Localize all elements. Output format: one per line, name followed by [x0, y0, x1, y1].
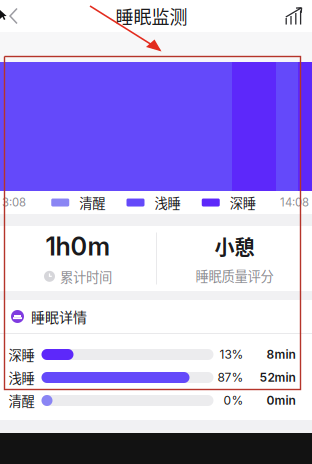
staticText: 睡眠详情 [31, 306, 87, 327]
staticText: 浅睡 [154, 193, 180, 212]
staticText: 小憩 [214, 232, 254, 261]
staticText: 清醒 [8, 391, 34, 410]
staticText: 睡眠质量评分 [195, 266, 273, 285]
staticText: 深睡 [8, 345, 34, 364]
staticText: 清醒 [79, 193, 105, 212]
staticText: 0% [223, 393, 243, 408]
staticText: 浅睡 [8, 368, 34, 387]
staticText: 3:08 [2, 196, 26, 209]
staticText: 14:08 [280, 196, 309, 209]
staticText: 0min [266, 393, 295, 408]
staticText: 睡眠监测 [115, 3, 187, 29]
staticText: 8min [266, 347, 295, 362]
button[interactable]: Statistics [275, 0, 312, 32]
staticText: 累计时间 [60, 267, 112, 286]
staticText: 深睡 [230, 193, 256, 212]
staticText: 13% [219, 347, 243, 362]
staticText: 87% [217, 370, 243, 385]
button[interactable]: Back [0, 0, 28, 32]
button[interactable]: 睡眠详情 [0, 300, 312, 333]
staticText: 52min [259, 370, 295, 385]
staticText: 1h0m [45, 231, 110, 262]
